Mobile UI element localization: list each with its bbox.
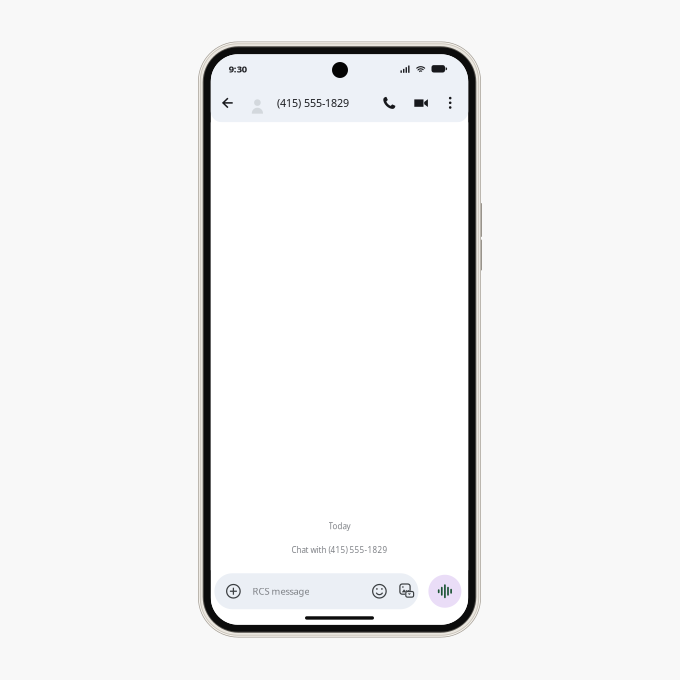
button[interactable]: More options — [443, 93, 457, 113]
button[interactable]: Back — [217, 92, 239, 114]
staticText: RCS message — [252, 585, 309, 597]
button[interactable]: Video call — [411, 93, 431, 113]
button[interactable]: Voice message — [428, 575, 461, 608]
button[interactable]: Call — [379, 93, 399, 113]
staticText: Today — [328, 521, 350, 532]
staticText: Chat with (415) 555-1829 — [291, 545, 387, 555]
staticText: (415) 555-1829 — [277, 96, 349, 110]
button[interactable]: Add attachment — [222, 580, 244, 602]
button[interactable]: Emoji — [368, 580, 390, 602]
button[interactable]: Gallery — [396, 580, 418, 602]
staticText: 9:30 — [229, 63, 247, 75]
